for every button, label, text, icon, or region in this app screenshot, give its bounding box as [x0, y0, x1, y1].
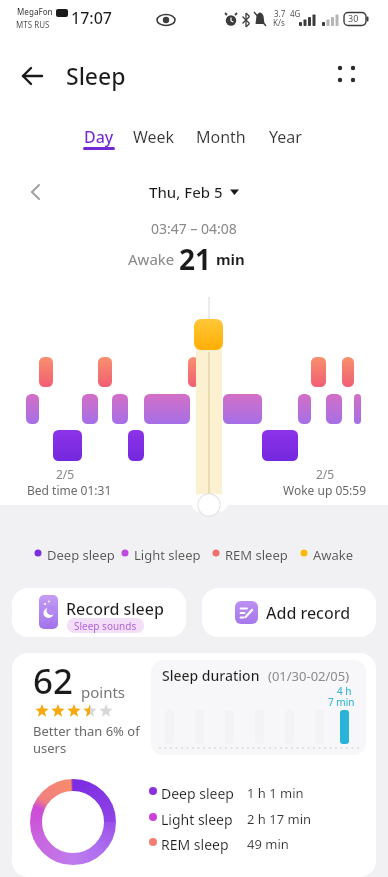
button[interactable]: Thu, Feb 5 [0, 182, 388, 204]
staticText: Woke up 05:59 [283, 482, 367, 498]
staticText: Bed time 01:31 [27, 482, 112, 498]
staticText: 1 h 1 min [247, 784, 304, 802]
staticText: MegaFon [17, 6, 53, 17]
staticText: min [212, 249, 245, 269]
button[interactable]: Record sleep [12, 588, 186, 637]
staticText: Better than 6% of [33, 722, 140, 740]
staticText: Month [196, 126, 246, 148]
staticText: Week [133, 126, 175, 148]
staticText: Record sleep [66, 598, 164, 620]
button[interactable] [74, 118, 126, 152]
button[interactable] [16, 58, 52, 94]
staticText: Awake [313, 546, 354, 564]
button[interactable] [22, 178, 50, 206]
staticText: 62 [33, 657, 74, 705]
staticText: 2/5 [56, 466, 75, 482]
staticText: (01/30-02/05) [268, 667, 350, 685]
staticText: 49 min [247, 835, 289, 853]
staticText: points [81, 682, 126, 702]
staticText: Thu, Feb 5 [149, 182, 223, 202]
staticText: Sleep sounds [74, 619, 137, 633]
staticText: Sleep duration [162, 666, 260, 685]
staticText: K/s [273, 17, 285, 28]
staticText: 2 h 17 min [247, 810, 312, 828]
staticText: 4G [290, 8, 301, 19]
staticText: Light sleep [134, 546, 201, 564]
button[interactable] [330, 58, 364, 92]
staticText: REM sleep [161, 835, 229, 854]
button[interactable]: Add record [202, 588, 376, 637]
staticText: users [33, 739, 67, 757]
staticText: Year [269, 126, 302, 148]
staticText: MTS RUS [16, 19, 50, 30]
staticText: Deep sleep [161, 784, 234, 803]
staticText: 21 [179, 240, 212, 272]
button[interactable] [188, 118, 250, 152]
staticText: 03:47 – 04:08 [151, 219, 237, 238]
button[interactable] [126, 118, 182, 152]
staticText: Light sleep [161, 810, 233, 829]
staticText: 17:07 [71, 7, 112, 29]
staticText: 30 [348, 12, 359, 24]
staticText: Day [84, 126, 114, 148]
staticText: Sleep [66, 60, 126, 91]
staticText: REM sleep [225, 546, 288, 564]
staticText: Deep sleep [47, 546, 115, 564]
staticText: 7 min [328, 695, 355, 709]
staticText: Awake [128, 249, 179, 269]
button[interactable] [260, 118, 312, 152]
staticText: 4 h [337, 684, 352, 698]
staticText: 3.7 [274, 8, 286, 19]
staticText: 2/5 [316, 466, 335, 482]
staticText: Add record [266, 602, 351, 624]
